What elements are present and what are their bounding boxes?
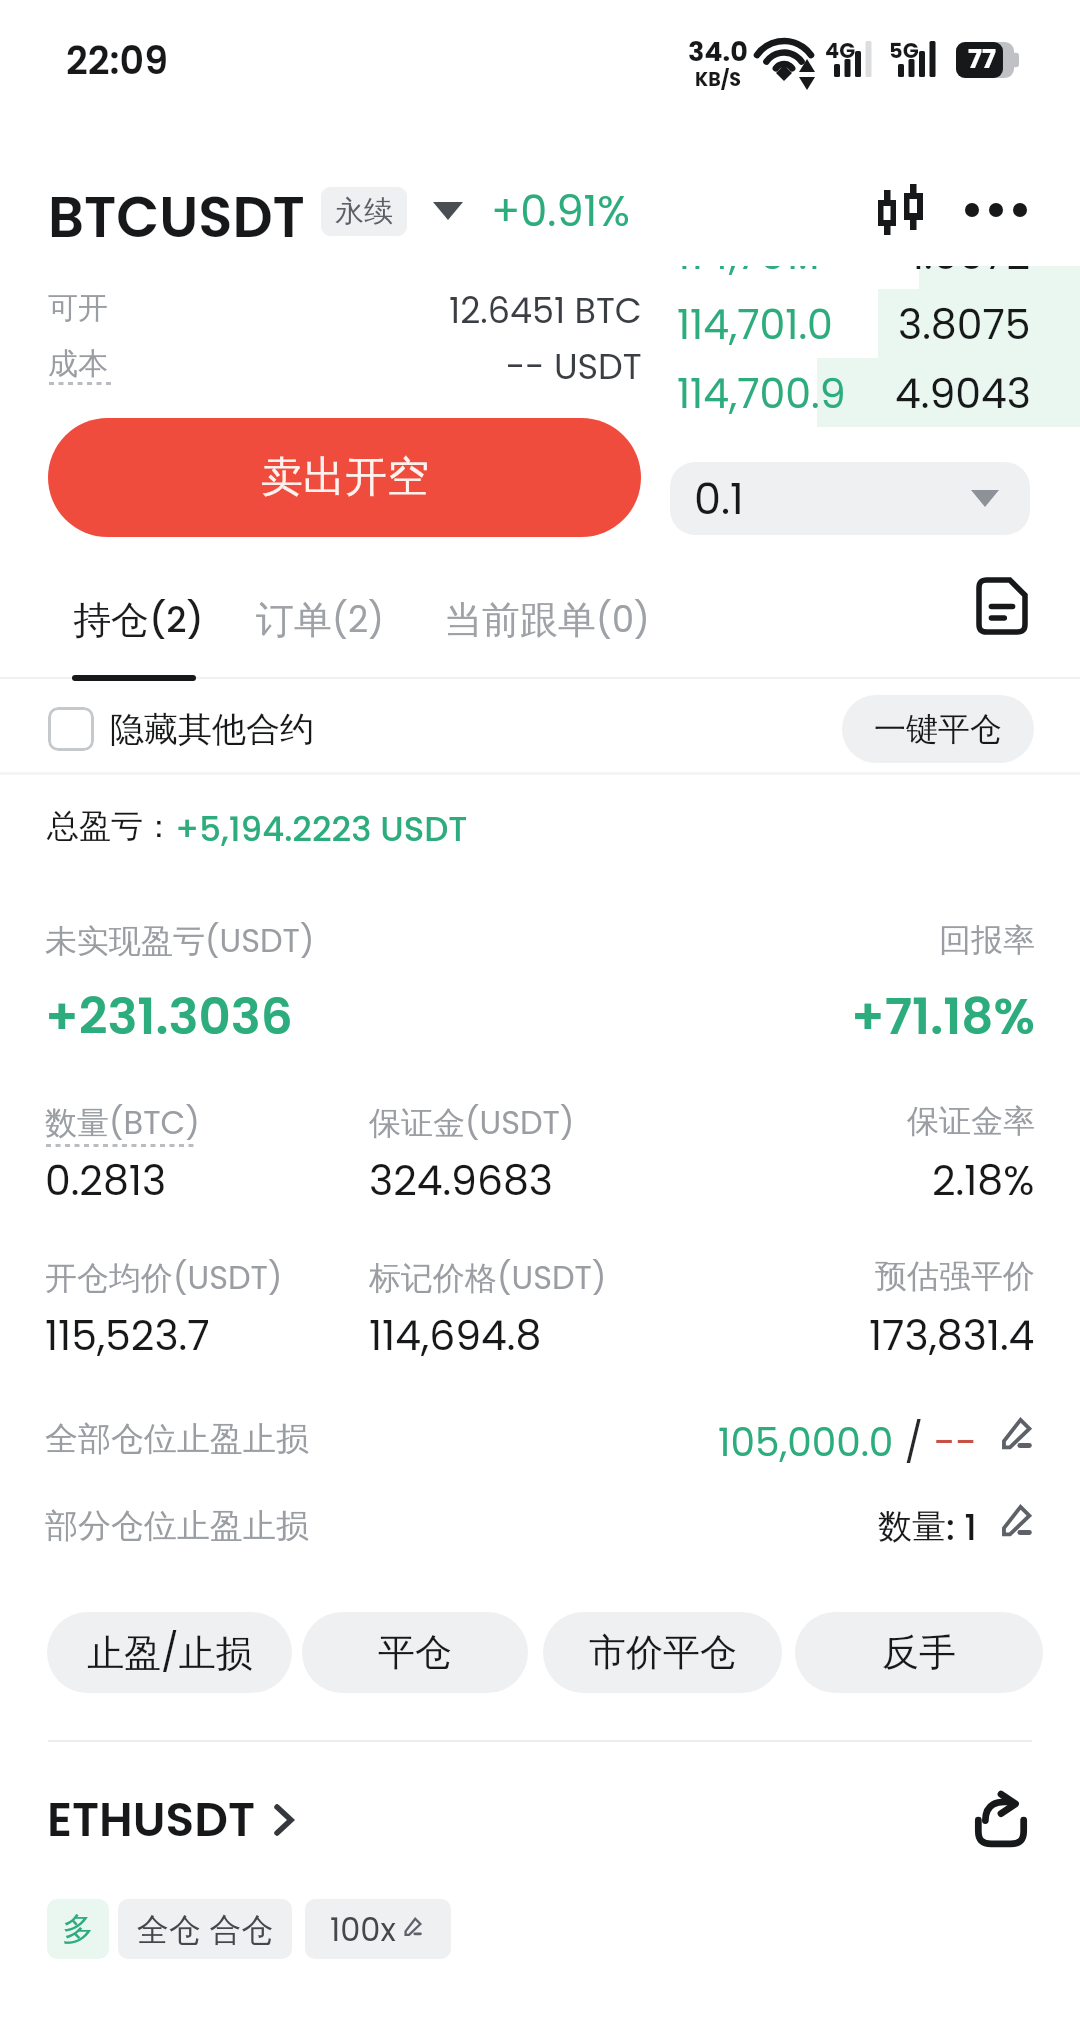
staticText: 114,694.8 — [369, 1307, 542, 1364]
staticText: +5,194.2223 USDT — [175, 805, 468, 847]
staticText: 永续 — [335, 193, 393, 230]
button[interactable]: 平仓 — [302, 1612, 528, 1693]
staticText: 保证金率 — [907, 1101, 1035, 1141]
button[interactable]: 卖出开空 — [48, 418, 641, 537]
staticText: 4G — [825, 36, 856, 65]
button[interactable]: 当前跟单 — [431, 578, 663, 662]
staticText: 预估强平价 — [875, 1256, 1035, 1296]
staticText: (2) — [332, 595, 384, 644]
button[interactable]: Share — [958, 1776, 1044, 1862]
staticText: 34.0 — [688, 33, 748, 71]
staticText: ETHUSDT — [47, 1787, 256, 1853]
button[interactable]: Order records — [958, 562, 1046, 650]
staticText: 全部仓位止盈止损 — [45, 1418, 309, 1460]
staticText: 115,523.7 — [45, 1307, 210, 1364]
button[interactable]: 止盈/止损 — [47, 1612, 292, 1693]
staticText: 卖出开空 — [261, 451, 429, 504]
staticText: 3.8075 — [898, 296, 1031, 352]
staticText: : 1 — [946, 1502, 977, 1550]
staticText: / — [894, 1415, 934, 1463]
button[interactable]: 0.1 — [670, 462, 1030, 535]
staticText: -- — [934, 1415, 977, 1463]
staticText: 324.9683 — [369, 1152, 554, 1209]
staticText: 77 — [968, 41, 996, 77]
staticText: 当前跟单 — [444, 596, 596, 644]
staticText: 0.1 — [694, 469, 744, 529]
button[interactable]: 一键平仓 — [842, 695, 1034, 763]
staticText: 0.2813 — [45, 1152, 167, 1209]
staticText: 5G — [889, 36, 919, 65]
button[interactable]: 持仓 — [60, 578, 217, 662]
staticText: 173,831.4 — [869, 1307, 1035, 1355]
staticText: (2) — [149, 595, 204, 644]
staticText: 100x — [330, 1907, 396, 1952]
staticText: 全仓 合仓 — [137, 1907, 274, 1952]
button[interactable]: Chart — [860, 172, 941, 247]
button[interactable]: 隐藏其他合约 — [44, 690, 318, 768]
staticText: -- USDT — [506, 342, 642, 386]
staticText: (0) — [596, 595, 650, 644]
staticText: +231.3036 — [45, 982, 293, 1038]
staticText: 持仓 — [73, 596, 149, 644]
button[interactable]: Edit — [991, 1415, 1039, 1463]
staticText: 保证金(USDT) — [369, 1100, 575, 1145]
button[interactable]: Edit — [991, 1502, 1039, 1550]
staticText: 数量(BTC) — [45, 1100, 200, 1145]
staticText: 隐藏其他合约 — [110, 708, 314, 751]
staticText: 114,701.0 — [677, 296, 833, 352]
staticText: 订单 — [256, 596, 332, 644]
staticText: 开仓均价(USDT) — [45, 1255, 283, 1300]
button[interactable]: 100x — [305, 1899, 451, 1959]
staticText: KB/S — [695, 66, 742, 93]
staticText: 114,700.9 — [677, 365, 846, 421]
button[interactable]: 市价平仓 — [543, 1612, 782, 1693]
staticText: 一键平仓 — [874, 709, 1002, 749]
staticText: 4.9043 — [895, 365, 1031, 421]
staticText: 市价平仓 — [589, 1629, 737, 1676]
staticText: 未实现盈亏(USDT) — [45, 918, 315, 962]
staticText: 标记价格(USDT) — [369, 1255, 607, 1300]
staticText: 多 — [62, 1909, 94, 1949]
staticText: 2.18% — [932, 1152, 1035, 1200]
staticText: +0.91% — [491, 181, 630, 241]
staticText: 平仓 — [378, 1629, 452, 1676]
staticText: 可开 — [48, 289, 108, 327]
button[interactable]: 反手 — [795, 1612, 1043, 1693]
staticText: +71.18% — [851, 982, 1035, 1038]
staticText: 总盈亏： — [47, 806, 175, 846]
staticText: 部分仓位止盈止损 — [45, 1505, 309, 1547]
staticText: 1.0072 — [911, 266, 1031, 282]
button[interactable]: 订单 — [243, 578, 397, 662]
staticText: 回报率 — [939, 920, 1035, 960]
staticText: 反手 — [882, 1629, 956, 1676]
staticText: 22:09 — [66, 34, 168, 87]
staticText: 止盈/止损 — [87, 1627, 253, 1679]
staticText: 12.6451 BTC — [449, 286, 642, 330]
button[interactable]: ETHUSDT — [47, 1785, 294, 1855]
button[interactable]: More options — [956, 172, 1036, 247]
staticText: 114,701.1 — [677, 266, 821, 282]
staticText: 105,000.0 — [718, 1415, 894, 1463]
staticText: 数量 — [878, 1505, 946, 1548]
staticText: 成本 — [48, 345, 108, 383]
button[interactable]: Edit — [398, 1916, 426, 1944]
staticText: BTCUSDT — [48, 178, 305, 244]
